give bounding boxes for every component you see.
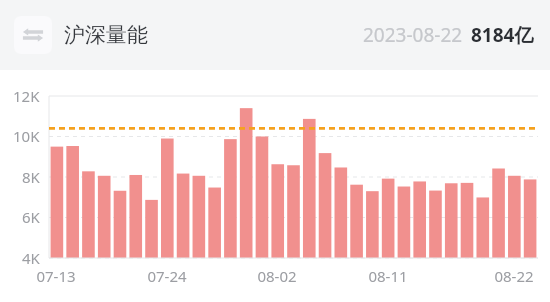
staticText: 08-22 — [494, 266, 534, 286]
staticText: 12K — [13, 86, 40, 106]
staticText: 4K — [22, 248, 40, 268]
staticText: 07-13 — [36, 266, 76, 286]
staticText: 8184亿 — [471, 22, 534, 48]
staticText: 沪深量能 — [64, 22, 148, 48]
staticText: 08-02 — [257, 266, 297, 286]
staticText: 10K — [13, 126, 40, 146]
staticText: 08-11 — [368, 266, 408, 286]
button[interactable]: Switch indicator — [14, 16, 52, 54]
staticText: 6K — [22, 207, 40, 227]
staticText: 8K — [22, 167, 40, 187]
staticText: 07-24 — [147, 266, 187, 286]
staticText: 2023-08-22 — [363, 22, 463, 48]
